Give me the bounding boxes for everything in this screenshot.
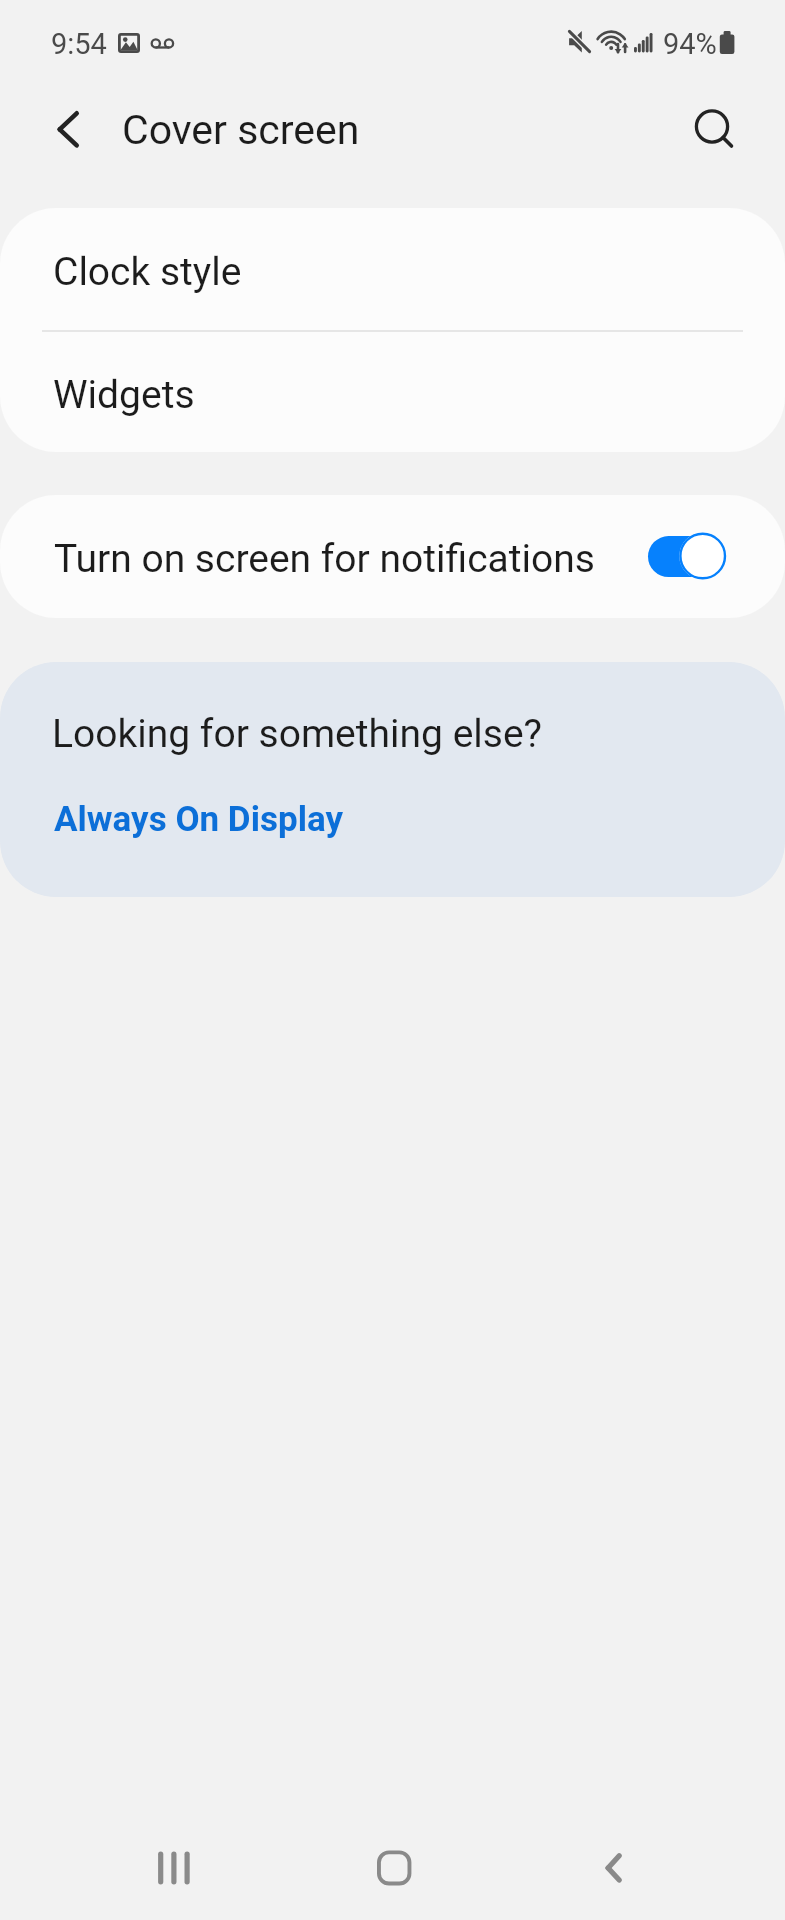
- button[interactable]: Turn on screen for notifications: [0, 495, 785, 618]
- button[interactable]: Home: [333, 1808, 453, 1920]
- staticText: 94%: [663, 27, 717, 61]
- button[interactable]: Clock style: [0, 208, 785, 330]
- staticText: 9:54: [51, 27, 107, 61]
- button[interactable]: Turn on screen for notifications: [648, 533, 725, 581]
- button[interactable]: Always On Display: [54, 799, 344, 840]
- staticText: Clock style: [53, 249, 242, 295]
- staticText: Cover screen: [122, 106, 360, 154]
- staticText: Turn on screen for notifications: [54, 536, 595, 582]
- button[interactable]: Widgets: [0, 332, 785, 452]
- button[interactable]: Back: [553, 1808, 673, 1920]
- button[interactable]: Recent apps: [114, 1808, 234, 1920]
- staticText: Widgets: [53, 372, 195, 418]
- staticText: Always On Display: [54, 799, 344, 840]
- staticText: Looking for something else?: [52, 711, 543, 757]
- button[interactable]: Navigate up: [31, 91, 107, 167]
- button[interactable]: Search: [676, 93, 752, 169]
